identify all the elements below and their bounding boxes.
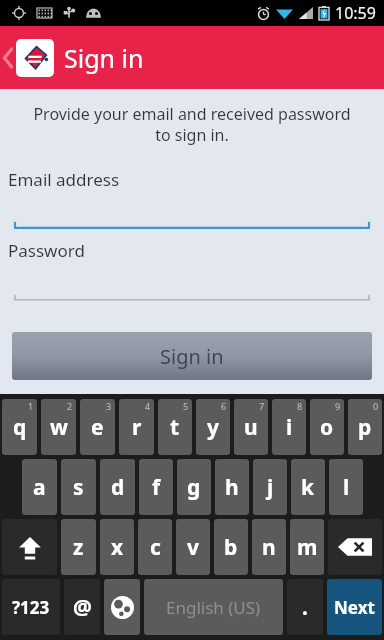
staticText: s xyxy=(73,473,84,502)
staticText: k xyxy=(301,473,315,502)
button[interactable]: a xyxy=(22,459,57,515)
staticText: j xyxy=(267,473,274,502)
staticText: l xyxy=(343,473,350,502)
button[interactable]: Shift xyxy=(2,519,57,575)
staticText: 9 xyxy=(335,400,341,412)
button[interactable]: Change language xyxy=(104,579,140,635)
staticText: c xyxy=(150,533,161,562)
button[interactable]: @ xyxy=(64,579,100,635)
button[interactable]: ?123 xyxy=(2,579,60,635)
button[interactable]: x xyxy=(100,519,134,575)
staticText: g xyxy=(187,473,201,502)
button[interactable]: c xyxy=(138,519,172,575)
button[interactable] xyxy=(14,219,370,235)
button[interactable]: i xyxy=(272,399,306,455)
staticText: ?123 xyxy=(12,596,50,619)
button[interactable]: l xyxy=(329,459,363,515)
staticText: o xyxy=(320,413,334,442)
staticText: i xyxy=(286,413,293,442)
staticText: q xyxy=(13,413,27,442)
button[interactable]: p xyxy=(348,399,382,455)
staticText: Password xyxy=(8,239,85,262)
button[interactable]: o xyxy=(310,399,344,455)
staticText: m xyxy=(297,533,318,562)
staticText: 5 xyxy=(183,400,189,412)
staticText: a xyxy=(33,473,46,502)
button[interactable]: b xyxy=(214,519,248,575)
button[interactable] xyxy=(14,292,370,306)
button[interactable]: u xyxy=(234,399,268,455)
staticText: v xyxy=(187,533,199,562)
button[interactable]: z xyxy=(61,519,96,575)
button[interactable]: y xyxy=(196,399,230,455)
staticText: u xyxy=(244,413,258,442)
staticText: 1 xyxy=(28,400,34,412)
button[interactable]: g xyxy=(177,459,211,515)
staticText: Sign in xyxy=(160,343,224,370)
staticText: y xyxy=(207,413,219,442)
staticText: r xyxy=(132,413,142,442)
staticText: x xyxy=(111,533,124,562)
button[interactable]: w xyxy=(41,399,76,455)
staticText: 6 xyxy=(221,400,227,412)
button[interactable]: t xyxy=(158,399,192,455)
staticText: Provide your email and received password… xyxy=(24,103,360,146)
staticText: z xyxy=(73,533,84,562)
staticText: 7 xyxy=(259,400,265,412)
button[interactable]: s xyxy=(61,459,96,515)
button[interactable]: . xyxy=(287,579,323,635)
staticText: English (US) xyxy=(166,596,261,619)
staticText: 3 xyxy=(106,400,112,412)
button[interactable]: f xyxy=(139,459,173,515)
staticText: e xyxy=(91,413,104,442)
button[interactable]: English (US) xyxy=(144,579,283,635)
staticText: Sign in xyxy=(64,41,144,75)
button[interactable]: k xyxy=(291,459,325,515)
button[interactable]: n xyxy=(252,519,286,575)
button[interactable]: r xyxy=(119,399,154,455)
button[interactable]: Sign in xyxy=(12,332,372,380)
staticText: n xyxy=(262,533,276,562)
button[interactable]: Next xyxy=(327,579,382,635)
staticText: f xyxy=(152,473,161,502)
staticText: Email address xyxy=(8,168,120,191)
staticText: . xyxy=(302,593,308,622)
staticText: 0 xyxy=(373,400,379,412)
button[interactable]: j xyxy=(253,459,287,515)
staticText: w xyxy=(50,413,68,442)
button[interactable]: Backspace xyxy=(328,519,382,575)
staticText: d xyxy=(111,473,125,502)
staticText: Next xyxy=(334,596,375,619)
button[interactable]: v xyxy=(176,519,210,575)
button[interactable]: e xyxy=(80,399,115,455)
staticText: 8 xyxy=(297,400,303,412)
staticText: t xyxy=(170,413,180,442)
button[interactable]: q xyxy=(2,399,37,455)
staticText: 4 xyxy=(145,400,151,412)
staticText: h xyxy=(225,473,239,502)
staticText: @ xyxy=(73,593,92,622)
button[interactable]: h xyxy=(215,459,249,515)
button[interactable]: m xyxy=(290,519,324,575)
button[interactable]: Back xyxy=(0,26,58,89)
staticText: 2 xyxy=(67,400,73,412)
staticText: 10:59 xyxy=(335,2,376,24)
staticText: b xyxy=(224,533,238,562)
staticText: p xyxy=(358,413,372,442)
button[interactable]: d xyxy=(100,459,135,515)
